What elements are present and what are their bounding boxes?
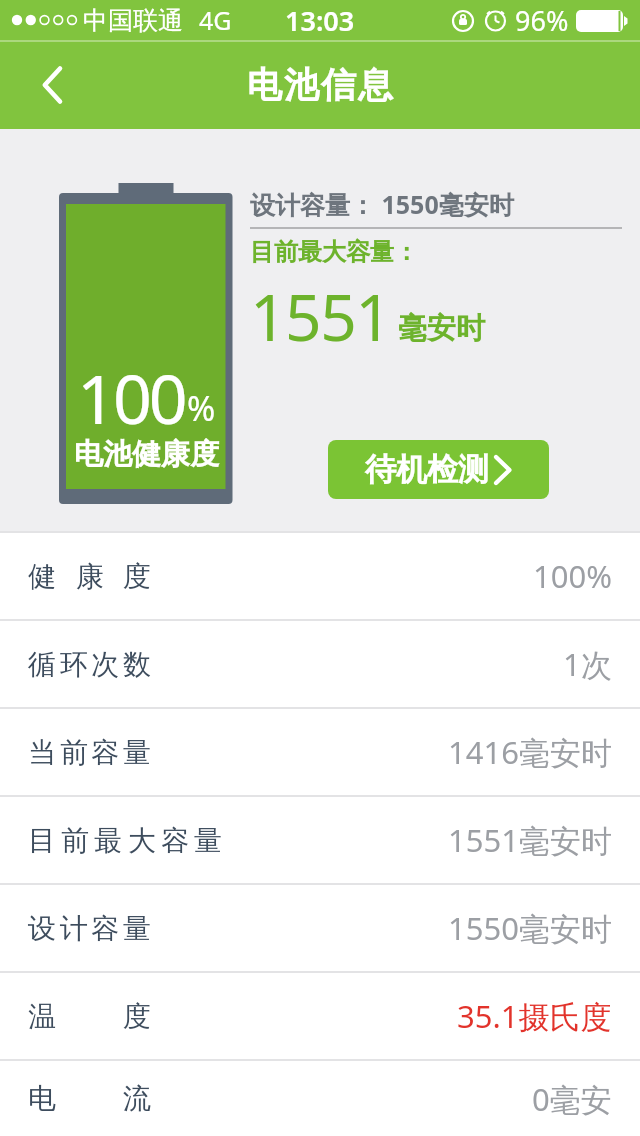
- staticText: %: [187, 385, 216, 431]
- staticText: 毫安时: [398, 310, 485, 347]
- button[interactable]: 当: [0, 709, 640, 795]
- button[interactable]: 待机检测: [328, 440, 549, 499]
- staticText: 容: [91, 911, 119, 946]
- staticText: 目前最大容量：: [250, 237, 418, 267]
- staticText: 循: [28, 647, 56, 682]
- button[interactable]: [0, 40, 90, 129]
- staticText: 96%: [515, 2, 569, 39]
- staticText: 温: [28, 999, 56, 1034]
- staticText: 当: [28, 735, 56, 770]
- staticText: 度: [123, 999, 151, 1034]
- staticText: 流: [123, 1081, 151, 1116]
- staticText: 次: [91, 647, 119, 682]
- staticText: 康: [76, 559, 104, 594]
- staticText: 1551毫安时: [448, 819, 612, 861]
- staticText: 1551: [250, 273, 391, 360]
- button[interactable]: 设: [0, 885, 640, 971]
- staticText: 1次: [563, 643, 612, 685]
- staticText: 最: [94, 823, 122, 858]
- button[interactable]: 循: [0, 621, 640, 707]
- staticText: 待机检测: [365, 450, 489, 489]
- staticText: 13:03: [285, 2, 355, 39]
- staticText: 4G: [199, 3, 232, 37]
- staticText: 设: [28, 911, 56, 946]
- staticText: 度: [123, 559, 151, 594]
- staticText: 前: [61, 823, 89, 858]
- staticText: 目: [28, 823, 56, 858]
- staticText: 电: [28, 1081, 56, 1116]
- staticText: 电池信息: [246, 63, 394, 107]
- button[interactable]: 电: [0, 1061, 640, 1136]
- staticText: 数: [123, 647, 151, 682]
- staticText: 大: [128, 823, 156, 858]
- staticText: 100: [77, 351, 185, 444]
- staticText: 设计容量： 1550毫安时: [250, 187, 514, 221]
- staticText: 容: [161, 823, 189, 858]
- staticText: 量: [123, 735, 151, 770]
- staticText: 中国联通: [83, 5, 183, 36]
- staticText: 100%: [533, 555, 612, 597]
- staticText: 35.1摄氏度: [457, 995, 612, 1037]
- staticText: 健: [28, 559, 56, 594]
- staticText: 计: [60, 911, 88, 946]
- staticText: 量: [194, 823, 222, 858]
- staticText: 电池健康度: [74, 436, 219, 473]
- button[interactable]: 温: [0, 973, 640, 1059]
- staticText: 环: [60, 647, 88, 682]
- staticText: 1550毫安时: [448, 907, 612, 949]
- staticText: 量: [123, 911, 151, 946]
- staticText: 1416毫安时: [448, 731, 612, 773]
- staticText: 0毫安: [532, 1078, 612, 1120]
- staticText: 容: [91, 735, 119, 770]
- button[interactable]: 目: [0, 797, 640, 883]
- button[interactable]: 健: [0, 533, 640, 619]
- staticText: 前: [60, 735, 88, 770]
